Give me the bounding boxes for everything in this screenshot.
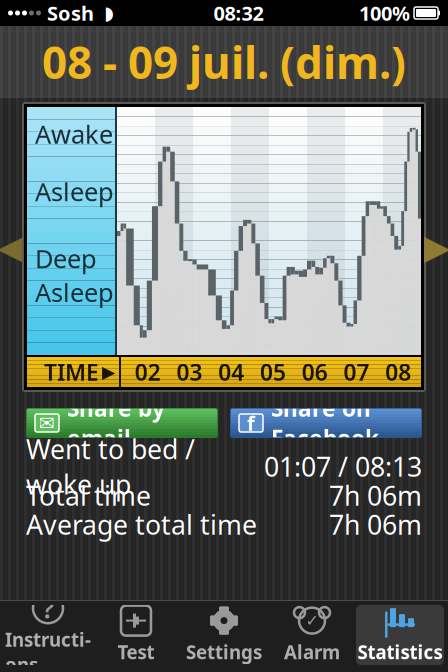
staticText: Sosh <box>47 0 94 26</box>
staticText: 04 <box>218 357 244 387</box>
staticText: Statistics <box>357 640 442 664</box>
staticText: Alarm <box>284 640 340 664</box>
button[interactable]: Test <box>92 605 180 665</box>
staticText: Awake <box>35 117 113 151</box>
button[interactable]: Settings <box>180 605 268 665</box>
button[interactable]: Previous night <box>0 217 22 277</box>
staticText: 07 <box>343 357 369 387</box>
staticText: 08 - 09 juil. (dim.) <box>42 33 406 91</box>
staticText: Share on Facebook <box>271 393 379 453</box>
staticText: Went to bed / woke up <box>26 431 195 502</box>
button[interactable]: Next night <box>426 217 448 277</box>
staticText: 02 <box>135 357 161 387</box>
staticText: Instructions <box>5 627 91 672</box>
button[interactable]: ✉ <box>26 408 218 438</box>
button[interactable]: Statistics <box>356 605 444 665</box>
staticText: ✓ <box>305 611 318 630</box>
staticText: Deep <box>35 242 97 275</box>
staticText: Test <box>117 640 154 664</box>
button[interactable]: f <box>230 408 422 438</box>
staticText: 06 <box>302 357 328 387</box>
staticText: 7h 06m <box>329 507 422 542</box>
button[interactable]: ? <box>4 605 92 665</box>
staticText: 08:32 <box>213 0 263 26</box>
staticText: TIME <box>44 357 99 387</box>
staticText: f <box>247 410 255 436</box>
staticText: Share by email <box>67 393 165 453</box>
staticText: ▶ <box>102 362 115 382</box>
staticText: ▶ <box>423 227 448 267</box>
staticText: ◗ <box>104 2 114 24</box>
staticText: 7h 06m <box>329 478 422 513</box>
staticText: Asleep <box>35 275 114 309</box>
staticText: Total time <box>26 478 151 513</box>
staticText: 01:07 / 08:13 <box>264 449 422 484</box>
button[interactable]: ✓ <box>268 605 356 665</box>
staticText: 08 <box>385 357 411 387</box>
staticText: ◀ <box>0 227 24 267</box>
staticText: Average total time <box>26 507 257 542</box>
staticText: 03 <box>177 357 203 387</box>
staticText: ? <box>42 590 54 626</box>
staticText: 100% <box>359 0 410 26</box>
staticText: Asleep <box>35 175 114 208</box>
staticText: ✉ <box>38 412 55 434</box>
staticText: 05 <box>260 357 286 387</box>
staticText: Settings <box>186 640 262 664</box>
